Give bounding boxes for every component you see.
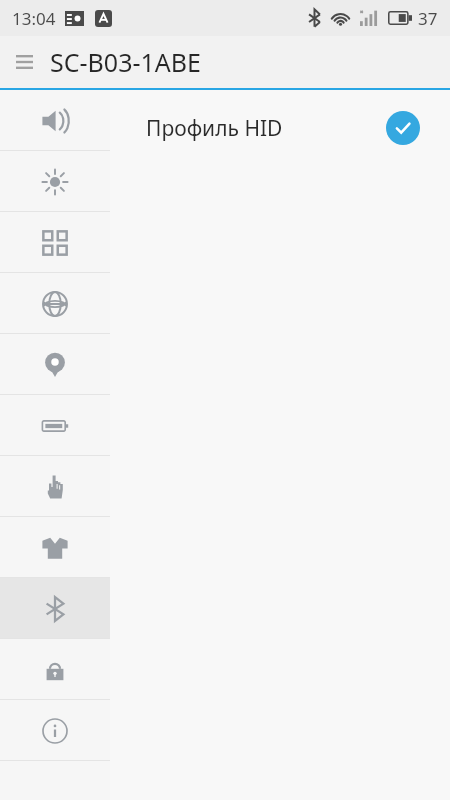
button[interactable]: Menu	[4, 42, 44, 82]
staticText: Профиль HID	[146, 114, 283, 143]
button[interactable]: Apps	[0, 212, 110, 273]
staticText: 37	[418, 7, 438, 30]
button[interactable]: Theme	[0, 517, 110, 578]
button[interactable]: Bluetooth	[0, 578, 110, 639]
button[interactable]: Профиль HID	[110, 90, 450, 166]
button[interactable]: Volume	[0, 90, 110, 151]
button[interactable]: Security	[0, 639, 110, 700]
button[interactable]: Network	[0, 273, 110, 334]
button[interactable]: Battery	[0, 395, 110, 456]
button[interactable]: Location	[0, 334, 110, 395]
staticText: 13:04	[12, 7, 56, 30]
button[interactable]: About	[0, 700, 110, 761]
button[interactable]: Brightness	[0, 151, 110, 212]
button[interactable]: Touch	[0, 456, 110, 517]
staticText: SC-B03-1ABE	[50, 45, 201, 79]
